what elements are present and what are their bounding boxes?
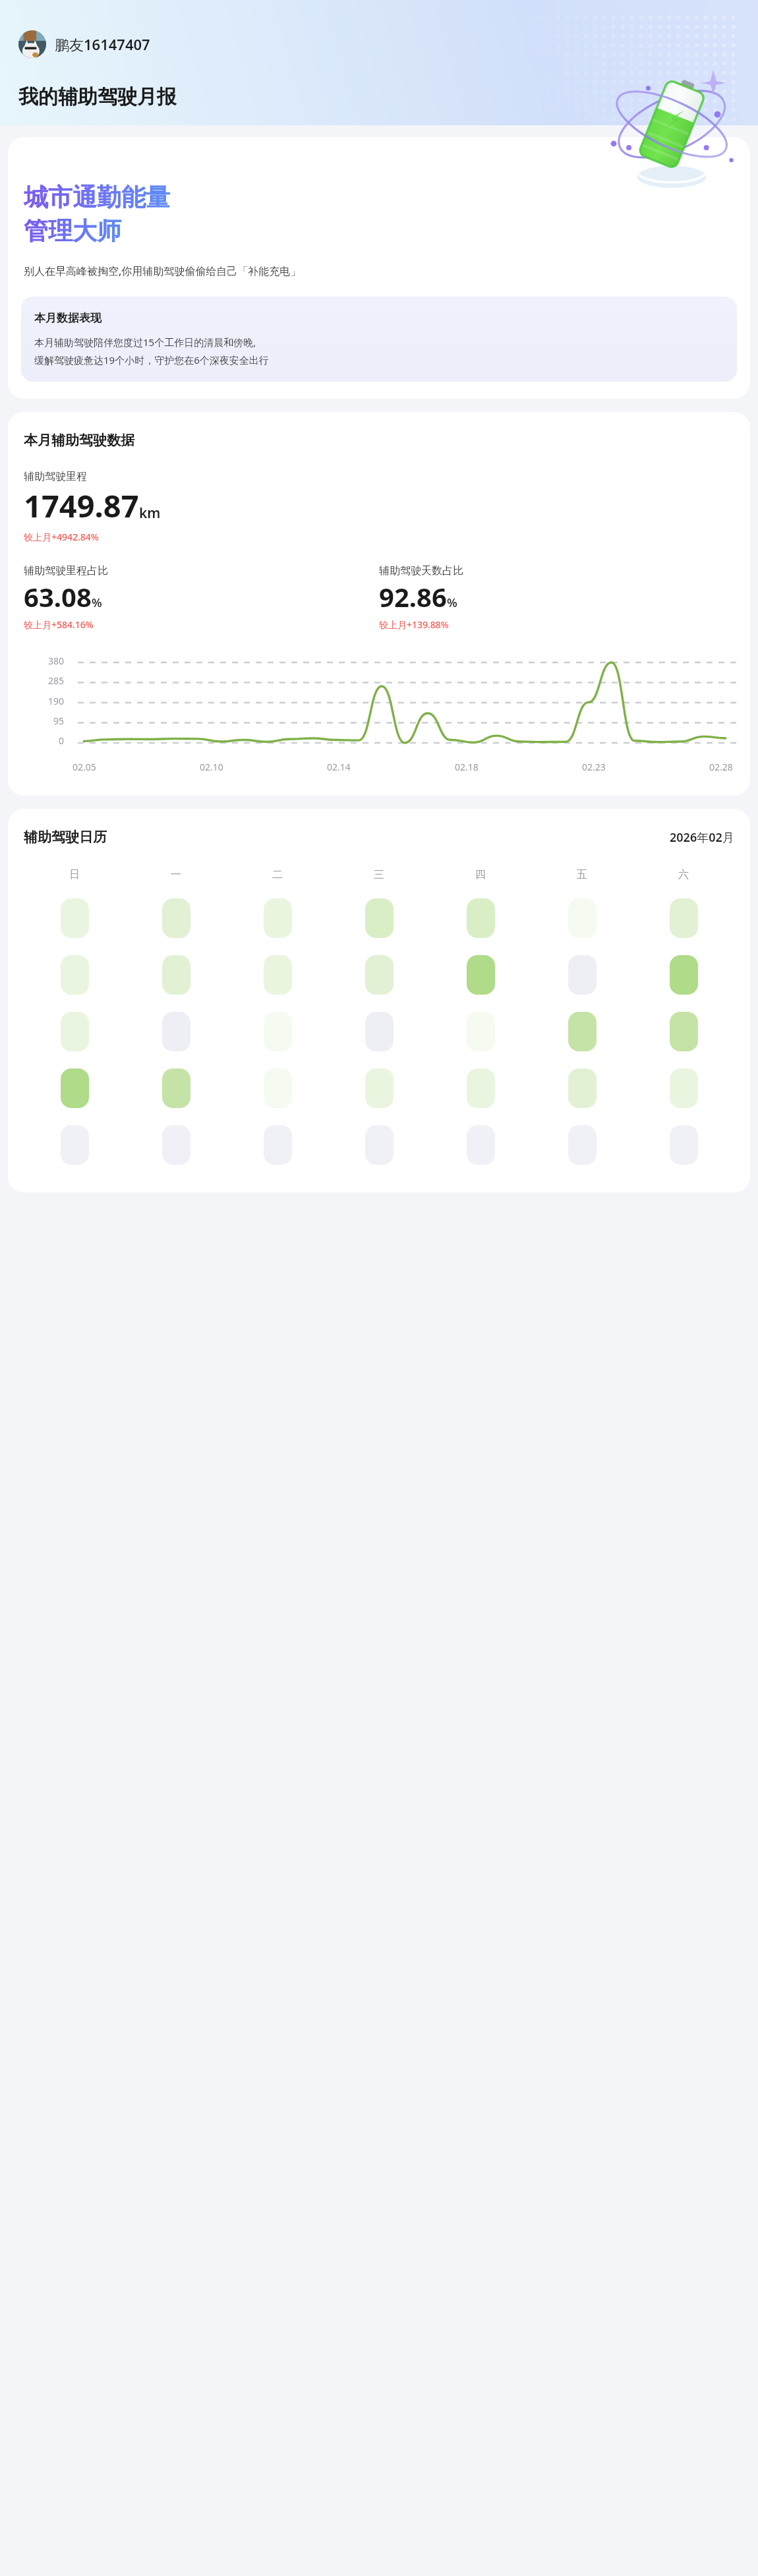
button[interactable] bbox=[264, 898, 292, 938]
button[interactable] bbox=[365, 1012, 394, 1051]
staticText: 较上月+4942.84% bbox=[24, 531, 99, 543]
other: Profile bbox=[18, 30, 46, 58]
staticText: 鹏友16147407 bbox=[55, 34, 150, 54]
staticText: 一 bbox=[171, 868, 181, 881]
button[interactable] bbox=[61, 1125, 89, 1165]
staticText: km bbox=[139, 504, 161, 523]
button[interactable] bbox=[670, 1068, 698, 1108]
button[interactable] bbox=[61, 1012, 89, 1051]
staticText: % bbox=[447, 595, 457, 611]
button[interactable] bbox=[467, 1012, 495, 1051]
button[interactable] bbox=[162, 1068, 190, 1108]
staticText: 95 bbox=[53, 715, 65, 727]
staticText: 日 bbox=[69, 868, 80, 881]
staticText: 2026年02月 bbox=[670, 829, 734, 846]
staticText: 02.10 bbox=[200, 761, 223, 773]
button[interactable] bbox=[670, 955, 698, 995]
button[interactable] bbox=[467, 898, 495, 938]
button[interactable] bbox=[365, 1068, 394, 1108]
button[interactable] bbox=[365, 1125, 394, 1165]
button[interactable] bbox=[61, 955, 89, 995]
staticText: 别人在早高峰被掏空,你用辅助驾驶偷偷给自己「补能充电」 bbox=[24, 264, 301, 278]
button[interactable] bbox=[568, 1012, 597, 1051]
button[interactable] bbox=[61, 898, 89, 938]
button[interactable] bbox=[568, 1068, 597, 1108]
staticText: 63.08 bbox=[24, 579, 92, 614]
button[interactable] bbox=[467, 1125, 495, 1165]
staticText: 02.18 bbox=[455, 761, 479, 773]
staticText: 02.14 bbox=[327, 761, 351, 773]
staticText: 二 bbox=[272, 868, 283, 881]
staticText: 190 bbox=[48, 695, 65, 707]
staticText: 三 bbox=[374, 868, 384, 881]
staticText: 较上月+584.16% bbox=[24, 618, 94, 631]
staticText: 城市通勤能量 bbox=[24, 182, 170, 213]
staticText: 本月数据表现 bbox=[34, 311, 102, 325]
staticText: 1749.87 bbox=[24, 484, 139, 527]
button[interactable] bbox=[162, 1012, 190, 1051]
button[interactable] bbox=[365, 955, 394, 995]
button[interactable] bbox=[365, 898, 394, 938]
staticText: 92.86 bbox=[379, 579, 447, 614]
staticText: 285 bbox=[48, 674, 65, 687]
staticText: 辅助驾驶里程占比 bbox=[24, 564, 108, 577]
button[interactable] bbox=[264, 955, 292, 995]
staticText: 02.28 bbox=[709, 761, 733, 773]
staticText: 辅助驾驶天数占比 bbox=[379, 564, 463, 577]
staticText: 辅助驾驶里程 bbox=[24, 470, 87, 483]
staticText: 380 bbox=[48, 655, 65, 667]
staticText: 辅助驾驶日历 bbox=[24, 829, 107, 846]
staticText: 02.23 bbox=[582, 761, 606, 773]
button[interactable] bbox=[264, 1068, 292, 1108]
staticText: 六 bbox=[678, 868, 689, 881]
button[interactable] bbox=[467, 1068, 495, 1108]
button[interactable] bbox=[264, 1012, 292, 1051]
button[interactable] bbox=[670, 898, 698, 938]
button[interactable] bbox=[61, 1068, 89, 1108]
staticText: 较上月+139.88% bbox=[379, 618, 449, 631]
button[interactable] bbox=[568, 898, 597, 938]
staticText: 本月辅助驾驶数据 bbox=[24, 432, 134, 449]
button[interactable] bbox=[568, 1125, 597, 1165]
button[interactable]: Profile bbox=[16, 28, 153, 61]
staticText: 我的辅助驾驶月报 bbox=[18, 84, 177, 109]
button[interactable] bbox=[568, 955, 597, 995]
button[interactable] bbox=[162, 1125, 190, 1165]
button[interactable] bbox=[264, 1125, 292, 1165]
staticText: 四 bbox=[475, 868, 486, 881]
staticText: 0 bbox=[59, 734, 65, 747]
staticText: 本月辅助驾驶陪伴您度过15个工作日的清晨和傍晚, 缓解驾驶疲惫达19个小时，守护… bbox=[34, 336, 269, 367]
button[interactable] bbox=[670, 1012, 698, 1051]
staticText: % bbox=[92, 595, 102, 611]
button[interactable] bbox=[467, 955, 495, 995]
staticText: 02.05 bbox=[73, 761, 96, 773]
button[interactable] bbox=[162, 898, 190, 938]
staticText: 五 bbox=[577, 868, 587, 881]
button[interactable] bbox=[670, 1125, 698, 1165]
staticText: 管理大师 bbox=[24, 216, 121, 247]
button[interactable] bbox=[162, 955, 190, 995]
